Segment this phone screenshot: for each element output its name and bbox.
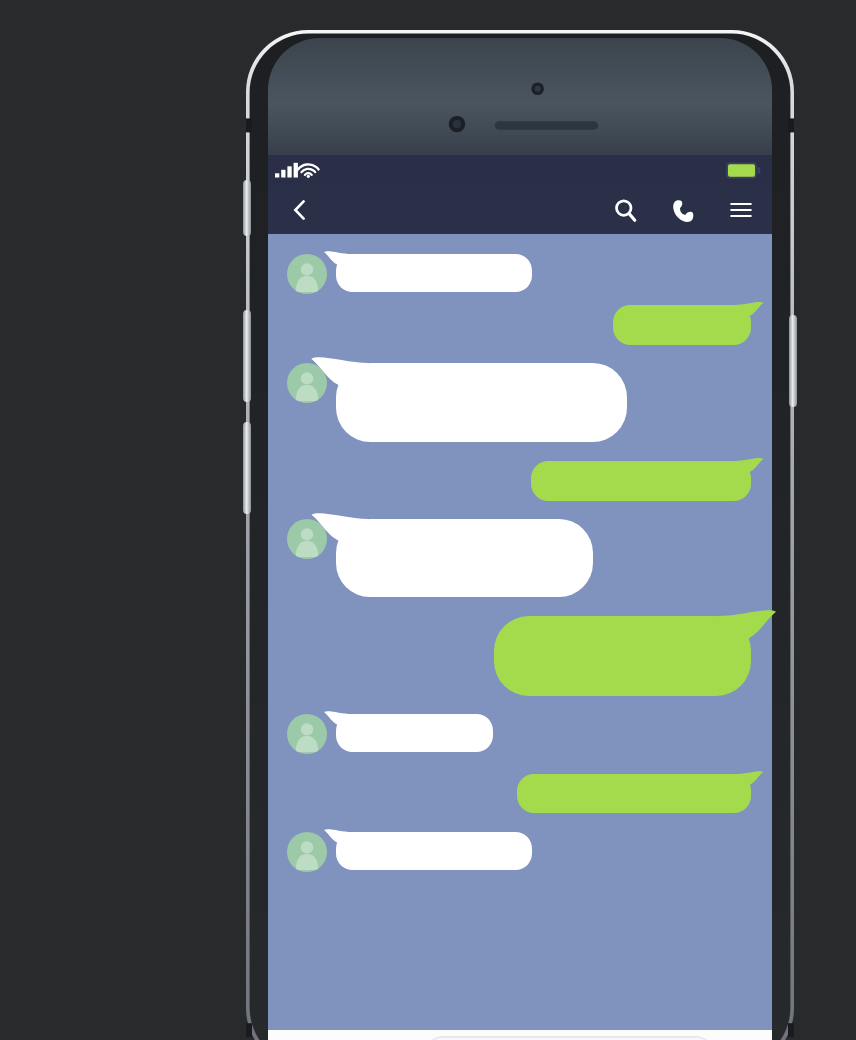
button[interactable]: Aa bbox=[424, 1036, 715, 1040]
button[interactable]: Sent message bbox=[613, 305, 751, 345]
button[interactable]: Call bbox=[654, 186, 710, 234]
button[interactable]: Sent message bbox=[517, 774, 751, 813]
button[interactable]: Menu bbox=[710, 186, 772, 234]
button[interactable]: Sent message bbox=[494, 616, 751, 696]
button[interactable]: Sent message bbox=[531, 461, 751, 501]
button[interactable]: Received message bbox=[336, 832, 532, 870]
button[interactable]: Search bbox=[596, 186, 654, 234]
button[interactable]: Received message bbox=[336, 714, 493, 752]
button[interactable]: Received message bbox=[336, 363, 627, 442]
button[interactable]: Received message bbox=[336, 519, 593, 597]
button[interactable]: Back bbox=[268, 186, 332, 234]
button[interactable]: Received message bbox=[336, 254, 532, 292]
